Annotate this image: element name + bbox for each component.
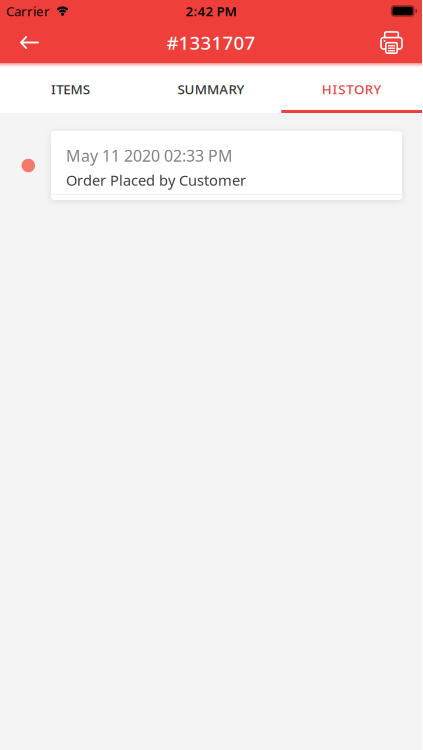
staticText: ITEMS <box>51 80 90 98</box>
staticText: Order Placed by Customer <box>66 170 246 190</box>
staticText: #1331707 <box>166 30 255 55</box>
button[interactable]: Back <box>0 22 50 63</box>
button[interactable]: SUMMARY <box>141 63 281 113</box>
staticText: SUMMARY <box>177 80 245 98</box>
button[interactable]: HISTORY <box>281 63 422 113</box>
staticText: HISTORY <box>322 80 382 98</box>
staticText: 2:42 PM <box>185 2 236 20</box>
button[interactable]: ITEMS <box>0 63 141 113</box>
staticText: May 11 2020 02:33 PM <box>66 145 233 166</box>
staticText: Carrier <box>6 2 50 20</box>
button[interactable]: Print <box>369 22 422 63</box>
